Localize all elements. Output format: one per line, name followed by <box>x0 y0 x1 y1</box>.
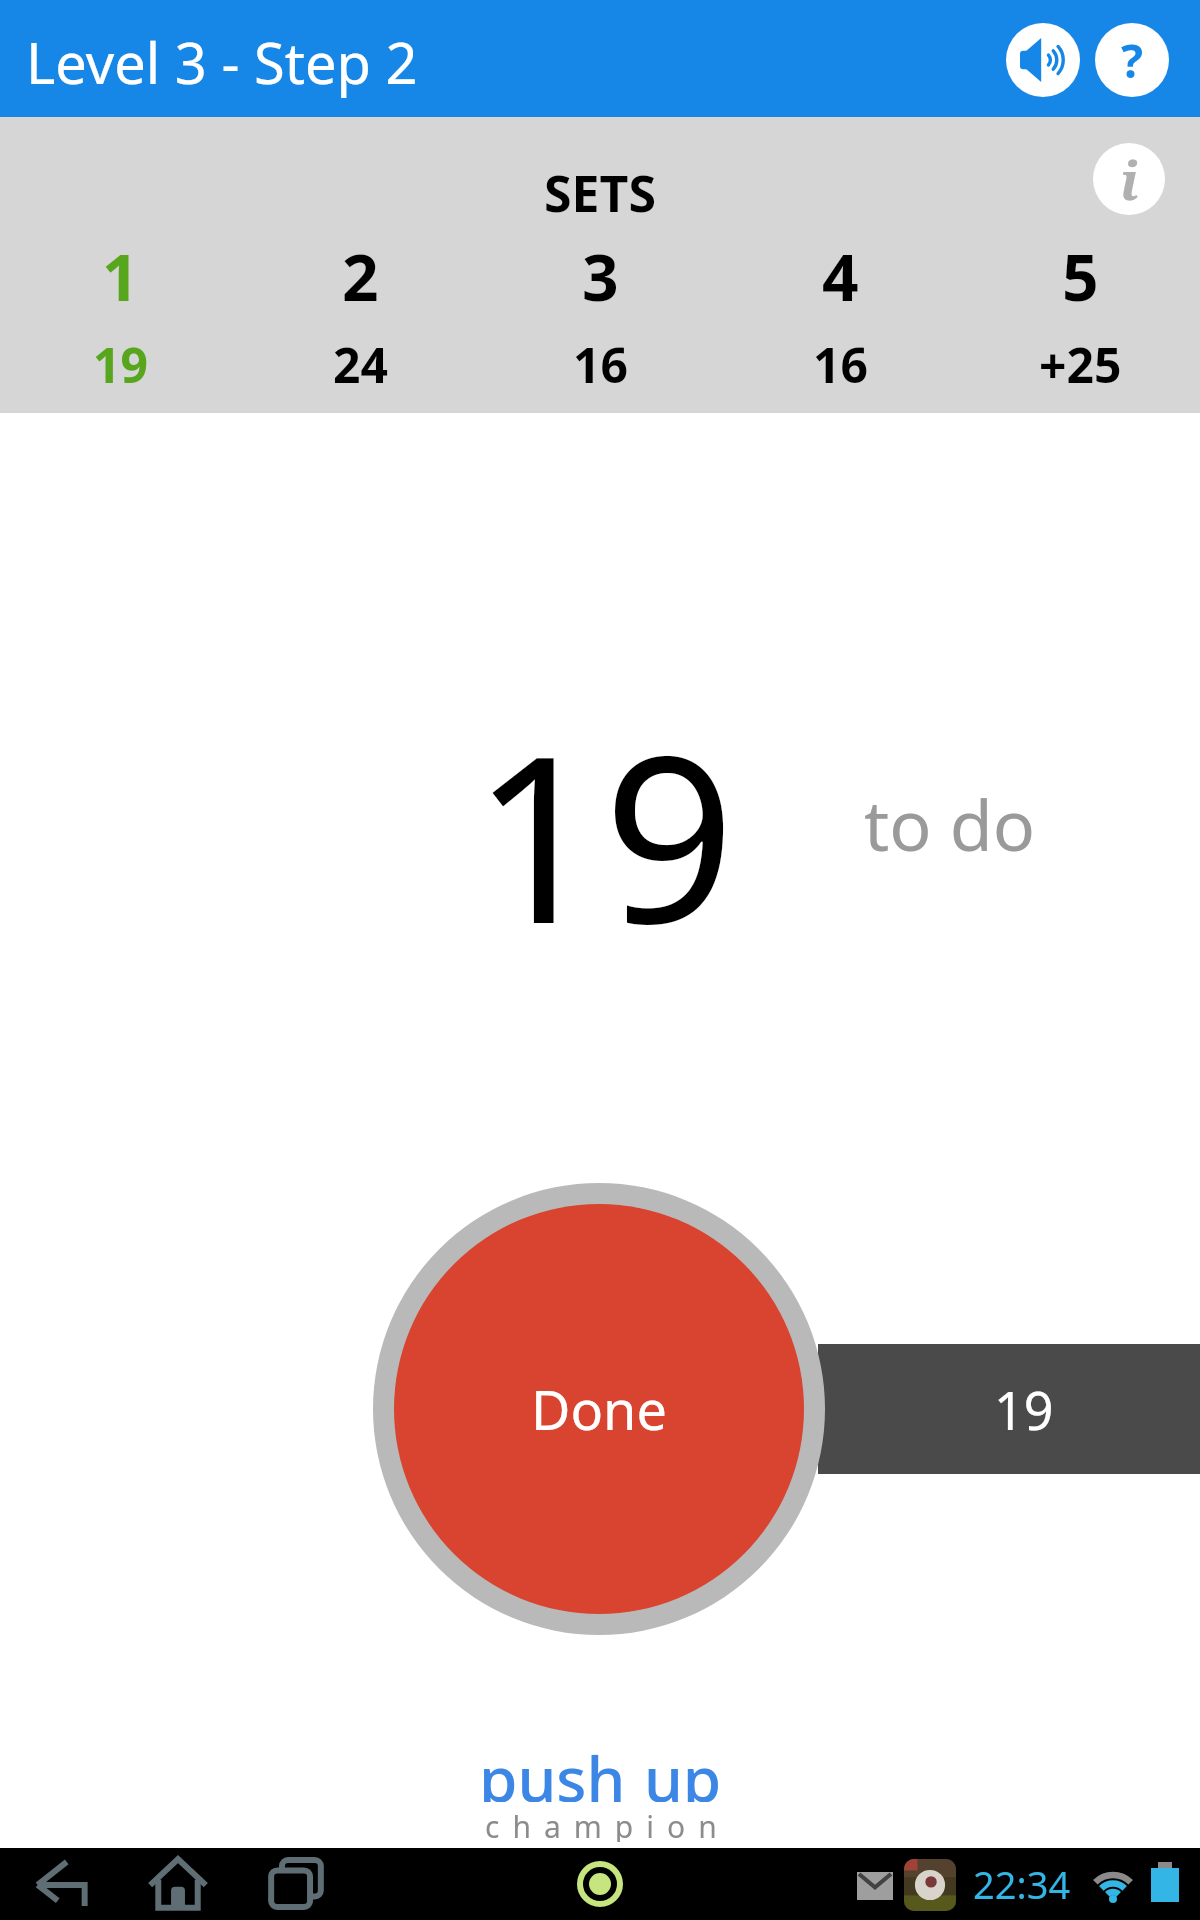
staticText: 19 <box>994 1374 1054 1445</box>
button[interactable]: 19 <box>818 1344 1200 1474</box>
staticText: 5 <box>1062 233 1099 305</box>
staticText: push <box>479 1736 626 1802</box>
button[interactable] <box>1006 23 1080 97</box>
button[interactable]: ? <box>1095 23 1169 97</box>
staticText: Done <box>531 1372 667 1446</box>
button[interactable] <box>22 1848 98 1920</box>
button[interactable] <box>258 1848 334 1920</box>
staticText: i <box>1120 144 1139 215</box>
button[interactable]: i <box>1093 143 1165 215</box>
staticText: 16 <box>813 332 868 394</box>
staticText: to do <box>864 776 1036 866</box>
staticText: 19 <box>472 677 736 947</box>
staticText: champion <box>485 1806 730 1842</box>
staticText: 24 <box>333 332 388 394</box>
staticText: ? <box>1121 29 1143 92</box>
staticText: 19 <box>93 332 148 394</box>
staticText: +25 <box>1039 332 1122 394</box>
staticText: 2 <box>342 233 379 305</box>
staticText: 4 <box>822 233 859 305</box>
staticText: up <box>644 1736 722 1802</box>
staticText: 3 <box>582 233 619 305</box>
staticText: SETS <box>544 159 656 219</box>
button[interactable]: Done <box>394 1204 804 1614</box>
staticText: Level 3 - Step 2 <box>26 24 418 100</box>
staticText: 22:34 <box>973 1858 1071 1910</box>
button[interactable] <box>562 1848 638 1920</box>
staticText: 1 <box>102 233 139 305</box>
staticText: 16 <box>573 332 628 394</box>
button[interactable] <box>140 1848 216 1920</box>
